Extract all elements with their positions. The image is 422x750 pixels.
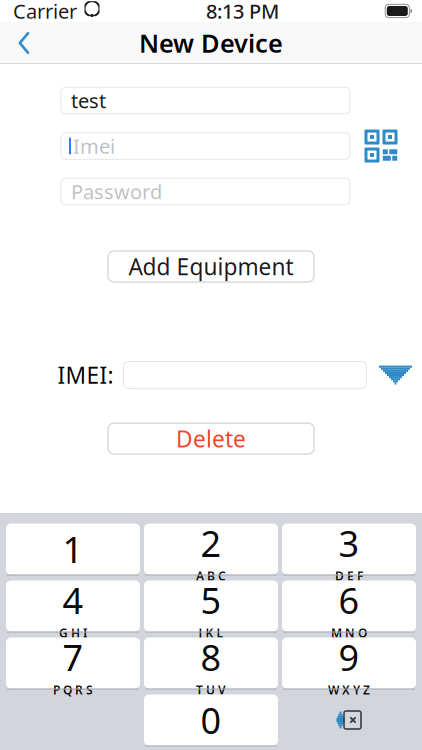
- staticText: 2: [200, 519, 221, 567]
- staticText: J K L: [198, 625, 223, 641]
- button[interactable]: 2: [144, 523, 278, 574]
- staticText: G H I: [59, 625, 87, 641]
- staticText: Add Equipment: [128, 251, 293, 281]
- staticText: 9: [338, 633, 359, 681]
- button[interactable]: Delete: [108, 423, 314, 454]
- staticText: IMEI:: [57, 360, 113, 390]
- staticText: 6: [338, 576, 359, 624]
- staticText: Carrier: [13, 0, 77, 24]
- staticText: test: [71, 87, 106, 114]
- button[interactable]: 5: [144, 580, 278, 631]
- button[interactable]: Add Equipment: [108, 251, 314, 282]
- staticText: Password: [71, 178, 162, 205]
- button[interactable]: 3: [282, 523, 416, 574]
- staticText: M N O: [331, 625, 367, 641]
- staticText: 0: [200, 696, 221, 744]
- button[interactable]: 8: [144, 637, 278, 688]
- staticText: New Device: [139, 26, 283, 60]
- button[interactable]: 4: [6, 580, 140, 631]
- staticText: A B C: [196, 568, 226, 584]
- button[interactable]: Choose IMEI: [376, 360, 414, 390]
- staticText: D E F: [335, 568, 363, 584]
- staticText: 7: [62, 633, 83, 681]
- staticText: 5: [200, 576, 221, 624]
- staticText: 4: [62, 576, 83, 624]
- button[interactable]: 7: [6, 637, 140, 688]
- staticText: P Q R S: [53, 682, 93, 698]
- button[interactable]: Scan QR code: [362, 127, 400, 165]
- staticText: 8:13 PM: [206, 0, 279, 24]
- button[interactable]: 6: [282, 580, 416, 631]
- staticText: 3: [338, 519, 359, 567]
- staticText: W X Y Z: [328, 682, 370, 698]
- staticText: Delete: [176, 424, 246, 454]
- button[interactable]: Delete: [282, 694, 416, 745]
- button[interactable]: 1: [6, 523, 140, 574]
- button[interactable]: IMEI value: [123, 362, 366, 389]
- staticText: Imei: [73, 133, 115, 159]
- button[interactable]: 9: [282, 637, 416, 688]
- button[interactable]: 0: [144, 694, 278, 745]
- staticText: 8: [200, 633, 221, 681]
- button[interactable]: Back: [0, 22, 48, 64]
- staticText: 1: [62, 525, 83, 573]
- staticText: T U V: [196, 682, 226, 698]
